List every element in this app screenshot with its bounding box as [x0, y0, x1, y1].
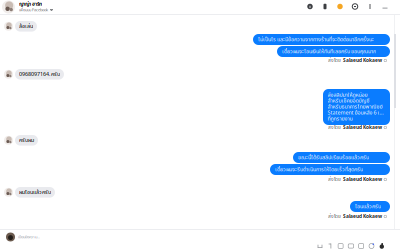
- staticText: เขียนข้อความ…: [18, 235, 40, 239]
- button[interactable]: Games: [358, 243, 364, 249]
- staticText: ครับผม: [19, 138, 34, 143]
- staticText: ส่งโดย: [328, 58, 341, 63]
- staticText: Salaeud Kokaew: [343, 177, 382, 182]
- button[interactable]: ผมโอนแล้วครับ: [15, 187, 55, 198]
- button[interactable]: Minimize chat: [382, 3, 388, 9]
- staticText: ผมโอนแล้วครับ: [19, 190, 51, 195]
- button[interactable]: เดี๋ยวผมจะโอนเงินให้ทันทีเลยครับ ขอบคุณม…: [277, 46, 390, 57]
- button[interactable]: Rate this conversation: [337, 3, 343, 9]
- staticText: 0968097164. ครับ: [19, 72, 60, 77]
- button[interactable]: Send a like: [379, 243, 385, 249]
- staticText: เดี๋ยวผมจะโอนเงินให้ทันทีเลยครับ ขอบคุณม…: [282, 49, 376, 54]
- button[interactable]: Attach a file: [327, 243, 333, 249]
- button[interactable]: ญาญ่า ฮาร์ท: [2, 0, 132, 14]
- staticText: ญาญ่า ฮาร์ท: [19, 2, 42, 7]
- staticText: ส่งโดย: [328, 214, 341, 219]
- staticText: Salaeud Kokaew: [343, 125, 382, 130]
- button[interactable]: Conversation information: [307, 3, 313, 9]
- staticText: Salaeud Kokaew: [343, 214, 382, 219]
- button[interactable]: Open sticker picker: [317, 243, 323, 249]
- button[interactable]: Audio call: [322, 3, 328, 9]
- button[interactable]: ล้อเล่น: [15, 21, 37, 32]
- button[interactable]: Choose an emoji: [368, 243, 374, 249]
- staticText: ขณะนี้ได้รับสลิปเรียบร้อยแล้วครับ: [298, 155, 369, 160]
- staticText: Statement ย้อนหลัง 6 เดือน: [327, 110, 385, 115]
- button[interactable]: Choose a GIF: [348, 243, 354, 249]
- button[interactable]: เดี๋ยวผมจะรีบดำเนินการให้โดยเร็วที่สุดคร…: [270, 164, 390, 175]
- staticText: ส่งโดย: [328, 177, 341, 182]
- button[interactable]: 0968097164. ครับ: [15, 69, 64, 80]
- button[interactable]: ขณะนี้ได้รับสลิปเรียบร้อยแล้วครับ: [293, 152, 390, 163]
- staticText: Salaeud Kokaew: [343, 58, 382, 63]
- button[interactable]: ครับผม: [15, 135, 38, 146]
- staticText: เพื่อนบน Facebook: [19, 8, 48, 12]
- staticText: สำหรับเช็คยอดบัญชี: [327, 98, 369, 103]
- button[interactable]: โอนแล้วครับ: [350, 201, 390, 212]
- staticText: ไม่เป็นไร และมีข้อความจากทางร้านที่จะติด…: [258, 37, 374, 42]
- staticText: เดี๋ยวผมจะรีบดำเนินการให้โดยเร็วที่สุดคร…: [275, 167, 363, 172]
- staticText: โอนแล้วครับ: [355, 204, 381, 209]
- button[interactable]: ไม่เป็นไร และมีข้อความจากทางร้านที่จะติด…: [253, 34, 390, 45]
- staticText: สำหรับธนาคารไทยพาณิชย์: [327, 104, 382, 109]
- button[interactable]: เขียนข้อความ…: [6, 232, 136, 242]
- staticText: ที่ถูกรายงาน: [327, 116, 352, 121]
- staticText: ล้อเล่น: [19, 24, 33, 29]
- button[interactable]: ส่งสลิปมาให้ดูหน่อย: [323, 89, 390, 125]
- button[interactable]: Attach a photo or video: [338, 243, 344, 249]
- button[interactable]: Video call: [352, 3, 358, 9]
- button[interactable]: More options: [367, 3, 373, 9]
- staticText: ส่งโดย: [328, 125, 341, 130]
- staticText: ส่งสลิปมาให้ดูหน่อย: [327, 92, 367, 97]
